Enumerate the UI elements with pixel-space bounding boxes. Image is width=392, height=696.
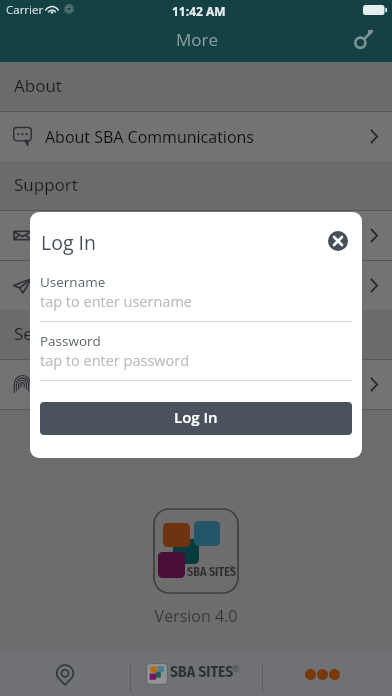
staticText: Security xyxy=(14,322,78,345)
button[interactable]: SBA SITES xyxy=(131,650,262,696)
button[interactable]: Touch ID xyxy=(0,360,392,409)
staticText: tap to enter username xyxy=(40,292,192,312)
staticText: Carrier xyxy=(6,2,44,18)
staticText: Password xyxy=(40,332,101,350)
staticText: ® xyxy=(232,662,240,674)
button[interactable]: Sites map xyxy=(0,650,130,696)
button[interactable]: More xyxy=(263,650,392,696)
staticText: Username xyxy=(40,273,106,291)
button[interactable]: Close xyxy=(328,231,348,251)
button[interactable]: Send Feedback xyxy=(0,261,392,310)
staticText: Version 4.0 xyxy=(0,605,392,627)
button[interactable]: Email Support xyxy=(0,211,392,260)
staticText: More xyxy=(176,28,219,51)
staticText: About SBA Communications xyxy=(45,126,254,148)
staticText: About xyxy=(14,74,62,97)
staticText: Email Support xyxy=(45,225,150,247)
staticText: 11:42 AM xyxy=(172,3,226,19)
staticText: ® xyxy=(229,564,235,574)
staticText: Log In xyxy=(174,407,218,427)
staticText: Log In xyxy=(41,229,96,256)
staticText: Support xyxy=(14,173,78,196)
button[interactable]: About SBA Communications xyxy=(0,112,392,161)
staticText: Send Feedback xyxy=(45,275,158,297)
staticText: SBA SITES xyxy=(187,565,237,579)
button[interactable]: Log In xyxy=(40,402,352,435)
staticText: Touch ID xyxy=(45,374,111,396)
staticText: tap to enter password xyxy=(40,351,190,371)
staticText: SBA SITES xyxy=(170,663,234,682)
button[interactable]: Log in xyxy=(344,19,384,59)
